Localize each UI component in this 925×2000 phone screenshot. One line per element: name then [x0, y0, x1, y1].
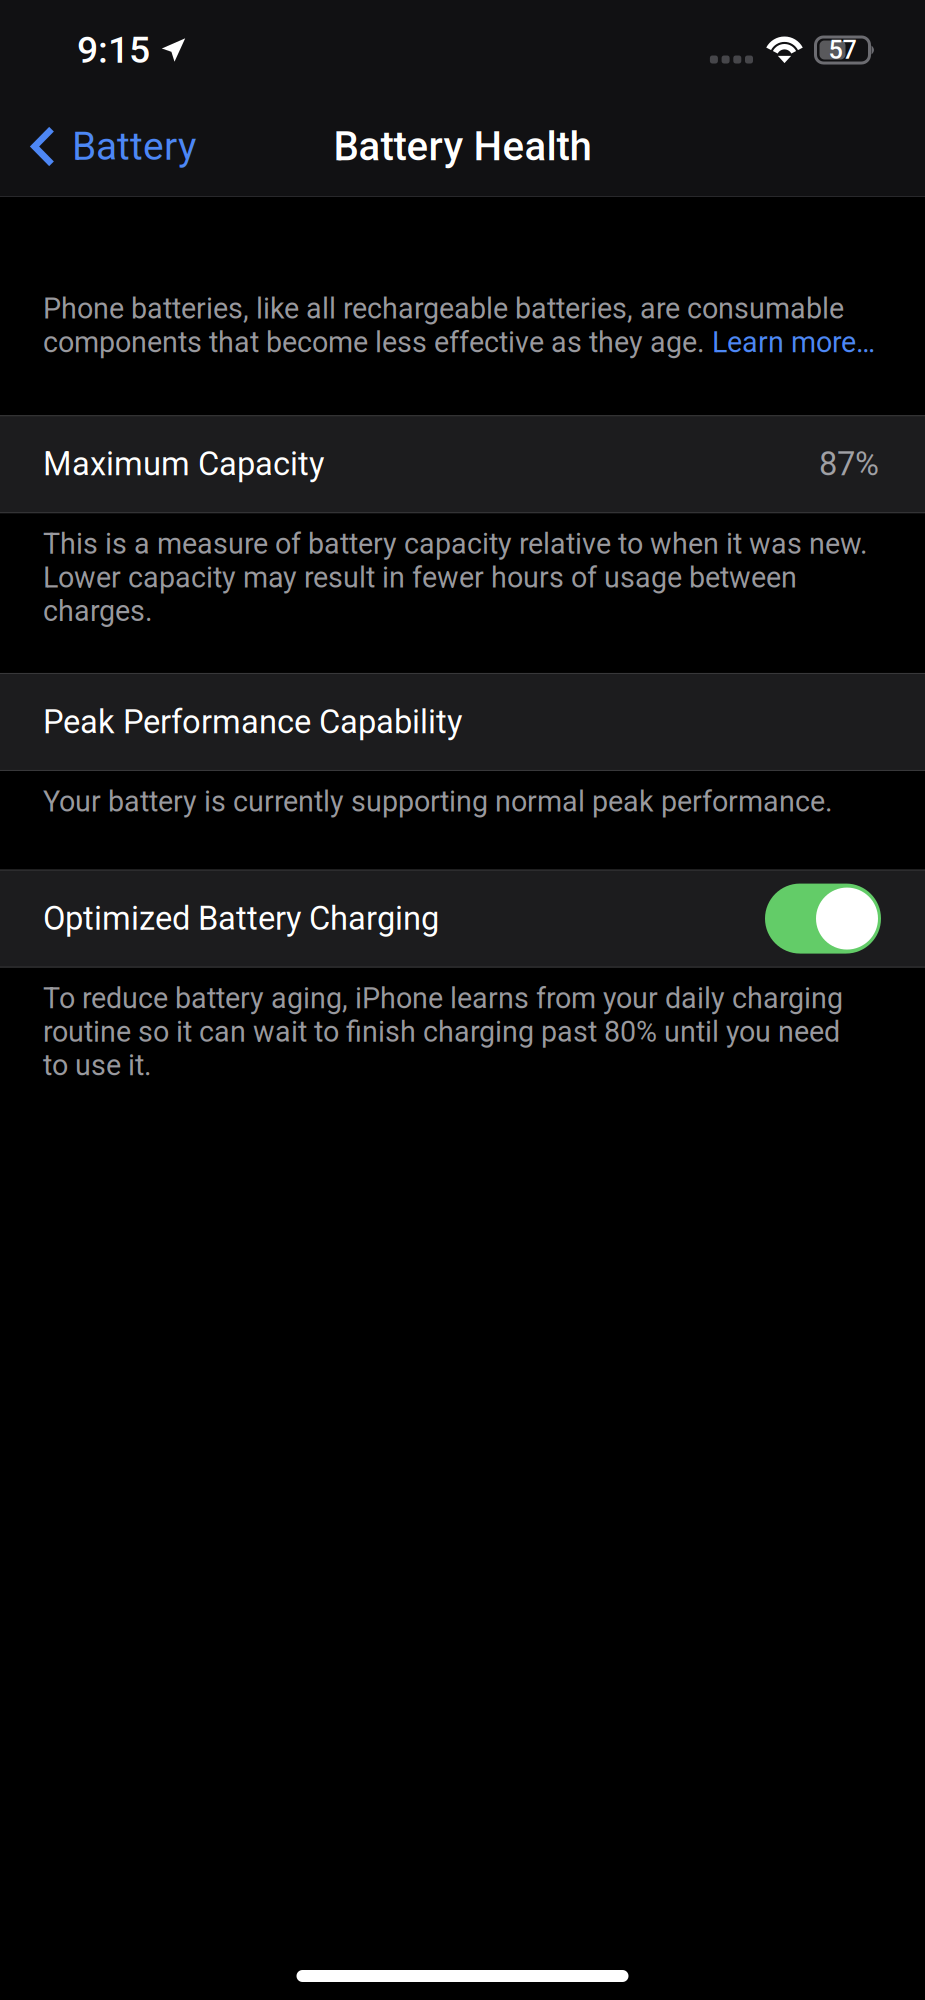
- staticText: 57: [828, 35, 856, 65]
- button[interactable]: Maximum Capacity: [0, 415, 925, 513]
- staticText: To reduce battery aging, iPhone learns f…: [43, 982, 843, 1015]
- staticText: 9:15: [77, 28, 150, 72]
- staticText: Phone batteries, like all rechargeable b…: [43, 292, 844, 326]
- staticText: Battery: [72, 124, 196, 169]
- button[interactable]: Battery: [0, 100, 216, 193]
- staticText: Lower capacity may result in fewer hours…: [43, 561, 797, 594]
- staticText: routine so it can wait to finish chargin…: [43, 1015, 840, 1049]
- staticText: Maximum Capacity: [43, 445, 324, 483]
- button[interactable]: Peak Performance Capability: [0, 673, 925, 771]
- button[interactable]: Optimized Battery Charging, on: [765, 884, 881, 954]
- staticText: Learn more…: [712, 326, 875, 359]
- staticText: to use it.: [43, 1049, 152, 1082]
- staticText: 87%: [819, 445, 879, 483]
- button[interactable]: Learn more…: [712, 326, 875, 359]
- staticText: Optimized Battery Charging: [43, 899, 439, 938]
- staticText: Your battery is currently supporting nor…: [43, 785, 833, 819]
- staticText: components that become less effective as…: [43, 326, 712, 359]
- staticText: Battery Health: [333, 123, 591, 170]
- staticText: charges.: [43, 594, 153, 628]
- staticText: This is a measure of battery capacity re…: [43, 527, 868, 561]
- staticText: Peak Performance Capability: [43, 703, 462, 741]
